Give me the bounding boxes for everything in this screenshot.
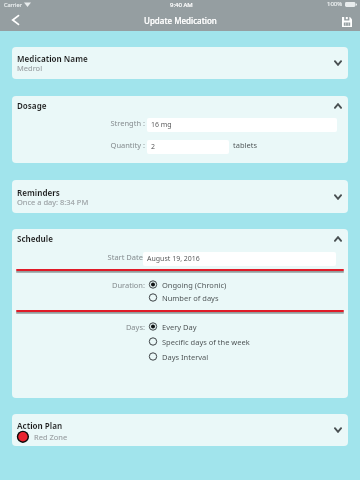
staticText: Number of days — [162, 293, 219, 303]
staticText: 9:40 AM — [170, 1, 193, 9]
button[interactable]: Action Plan — [12, 414, 348, 446]
button[interactable]: Every Day — [148, 321, 197, 332]
staticText: Update Medication — [144, 15, 217, 26]
button[interactable]: Back — [2, 10, 28, 29]
button[interactable]: Days Interval — [148, 351, 209, 362]
staticText: Medication Name — [17, 53, 88, 64]
staticText: Once a day: 8:34 PM — [17, 197, 89, 207]
button[interactable]: Save — [334, 12, 360, 31]
staticText: Medrol — [17, 63, 43, 73]
staticText: Duration: — [12, 280, 145, 290]
staticText: Reminders — [17, 187, 60, 198]
staticText: Every Day — [162, 322, 197, 332]
staticText: Dosage — [17, 100, 47, 111]
button[interactable]: 2 — [147, 140, 229, 154]
staticText: Quantity : — [12, 140, 145, 150]
staticText: 16 mg — [151, 120, 172, 130]
button[interactable]: Specific days of the week — [148, 336, 250, 347]
button[interactable]: Reminders — [12, 180, 348, 213]
staticText: 2 — [151, 142, 156, 152]
staticText: 100% — [327, 0, 343, 8]
staticText: August 19, 2016 — [147, 254, 200, 264]
button[interactable]: Dosage — [12, 96, 348, 118]
button[interactable]: Schedule — [12, 229, 348, 251]
staticText: Days Interval — [162, 352, 209, 362]
staticText: Red Zone — [34, 432, 68, 442]
staticText: Specific days of the week — [162, 337, 250, 347]
staticText: Strength : — [12, 118, 145, 128]
button[interactable]: August 19, 2016 — [143, 252, 336, 266]
staticText: Ongoing (Chronic) — [162, 280, 227, 290]
staticText: Days: — [12, 322, 145, 332]
button[interactable]: Ongoing (Chronic) — [148, 279, 227, 290]
button[interactable]: 16 mg — [147, 118, 337, 132]
staticText: tablets — [233, 140, 257, 150]
staticText: Start Date: — [12, 252, 145, 262]
button[interactable]: Number of days — [148, 292, 219, 303]
staticText: Carrier — [4, 1, 22, 8]
button[interactable]: Medication Name — [12, 47, 348, 79]
staticText: Action Plan — [17, 420, 63, 431]
staticText: Schedule — [17, 233, 53, 244]
